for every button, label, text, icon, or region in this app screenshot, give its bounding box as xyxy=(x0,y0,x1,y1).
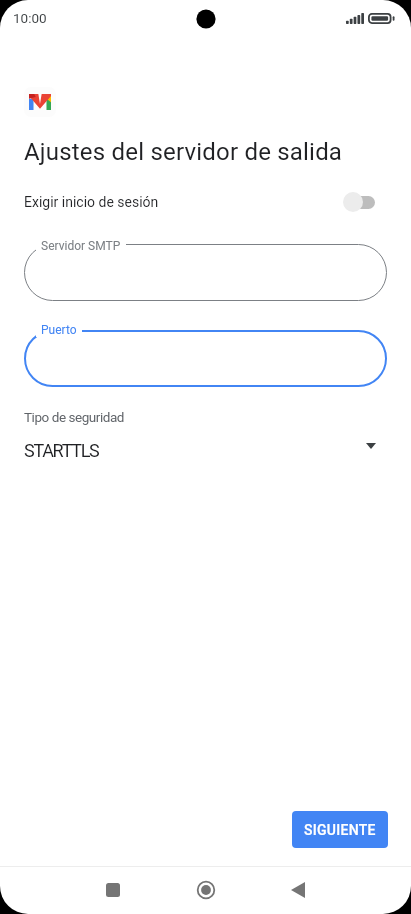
button[interactable]: Tipo de seguridad xyxy=(0,409,411,461)
button[interactable]: Recent apps xyxy=(93,870,133,910)
button[interactable]: Back xyxy=(278,870,318,910)
staticText: Tipo de seguridad xyxy=(24,409,125,425)
staticText: SIGUIENTE xyxy=(304,822,376,838)
staticText: Puerto xyxy=(41,323,77,337)
staticText: 10:00 xyxy=(13,10,47,26)
button[interactable]: SIGUIENTE xyxy=(292,811,388,848)
button[interactable]: Puerto xyxy=(24,330,387,387)
staticText: Ajustes del servidor de salida xyxy=(24,138,343,166)
button[interactable]: Servidor SMTP xyxy=(24,244,387,301)
staticText: Exigir inicio de sesión xyxy=(24,194,159,210)
button[interactable]: Exigir inicio de sesión xyxy=(0,184,411,220)
button[interactable]: Home xyxy=(186,870,226,910)
staticText: STARTTLS xyxy=(24,440,99,461)
staticText: Servidor SMTP xyxy=(41,239,121,253)
